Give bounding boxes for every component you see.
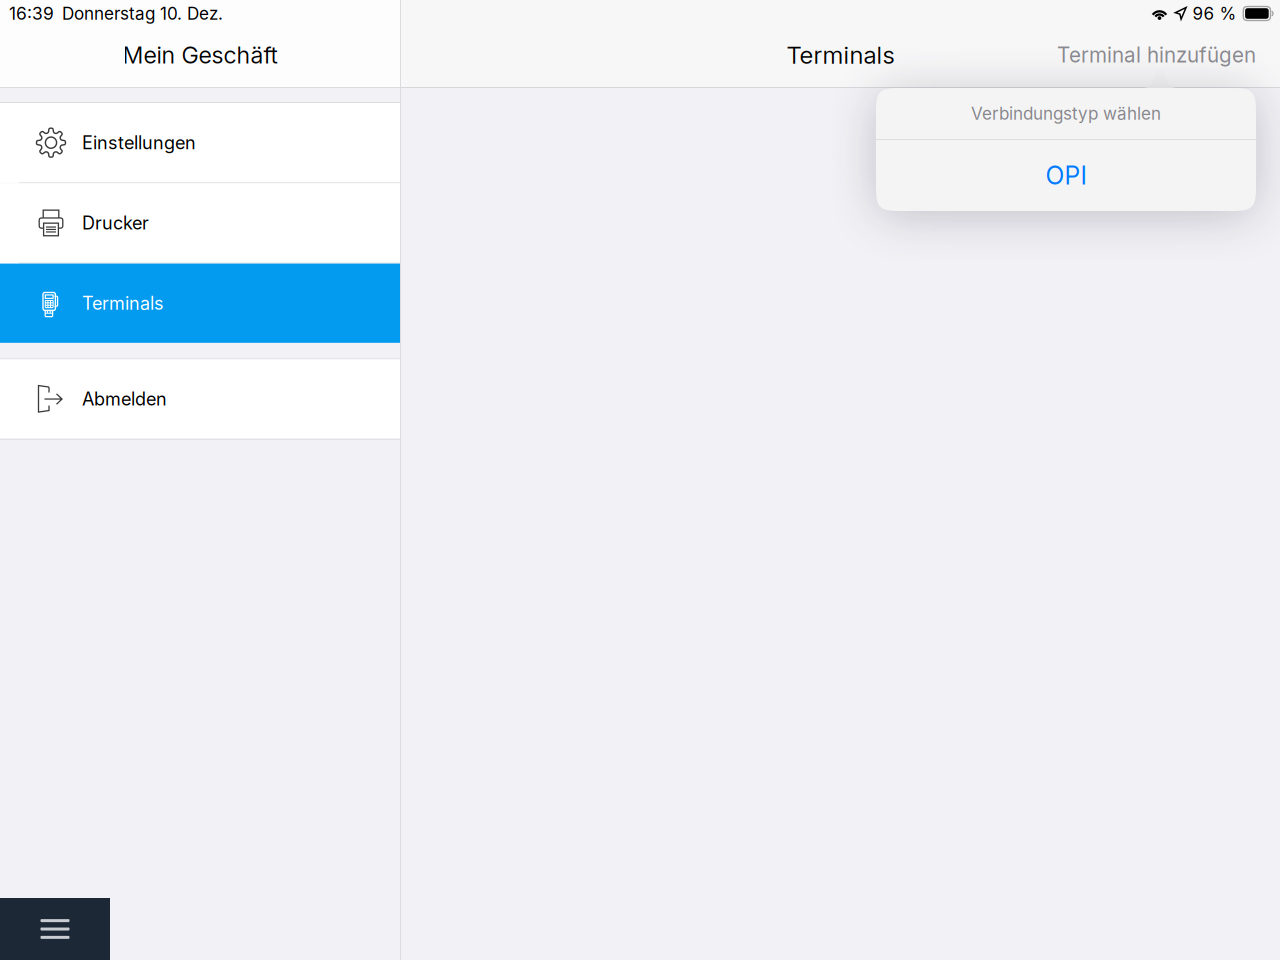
button[interactable]: Einstellungen xyxy=(0,103,400,182)
staticText: Einstellungen xyxy=(82,132,196,154)
button[interactable]: Drucker xyxy=(0,183,400,263)
button[interactable]: Abmelden xyxy=(0,359,400,439)
staticText: OPI xyxy=(1045,161,1086,190)
staticText: Abmelden xyxy=(82,388,167,410)
staticText: Drucker xyxy=(82,212,149,234)
staticText: Verbindungstyp wählen xyxy=(971,103,1161,124)
button[interactable]: Terminal hinzufügen xyxy=(1057,27,1256,83)
button[interactable]: Menü xyxy=(0,898,110,960)
staticText: Terminals xyxy=(786,40,894,69)
staticText: Donnerstag 10. Dez. xyxy=(62,3,223,24)
staticText: 16:39 xyxy=(9,3,54,24)
staticText: Mein Geschäft xyxy=(122,41,277,69)
button[interactable]: OPI xyxy=(876,140,1256,211)
button[interactable]: Terminals xyxy=(0,264,400,343)
staticText: 96 % xyxy=(1192,3,1236,24)
staticText: Terminals xyxy=(82,292,164,314)
staticText: Terminal hinzufügen xyxy=(1057,42,1256,67)
